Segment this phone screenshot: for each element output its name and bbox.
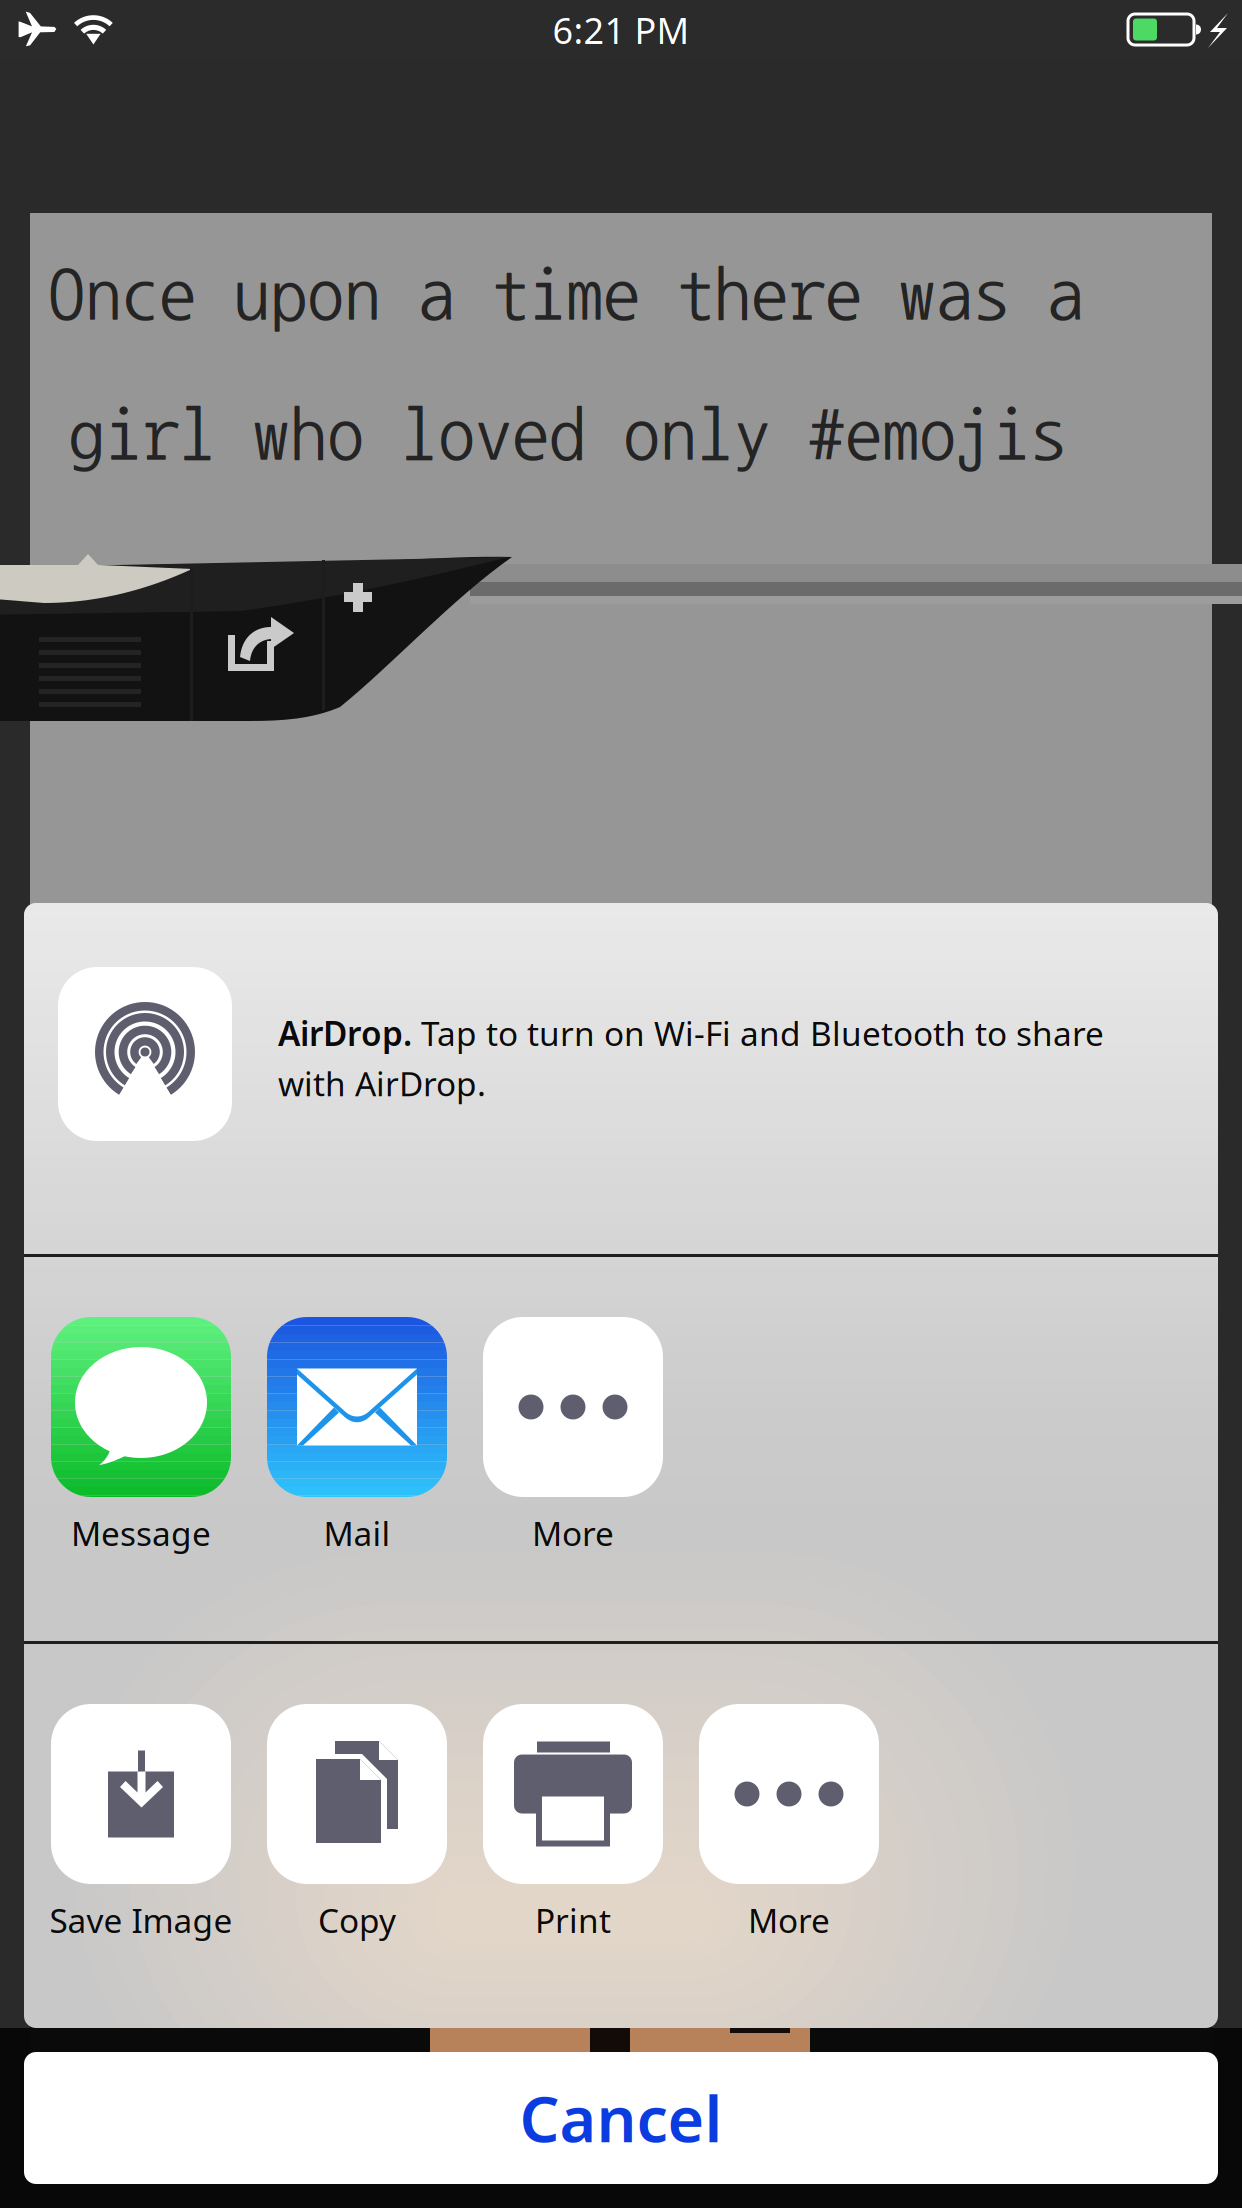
staticText: Cancel: [519, 2076, 722, 2160]
button[interactable]: Print: [0, 0, 400, 250]
staticText: with AirDrop.: [278, 1061, 486, 1106]
button[interactable]: More: [0, 0, 400, 250]
button[interactable]: Copy: [0, 0, 400, 250]
staticText: Save Image: [49, 1898, 232, 1942]
button[interactable]: More: [0, 0, 400, 250]
staticText: More: [748, 1898, 830, 1942]
staticText: Tap to turn on Wi-Fi and Bluetooth to sh…: [412, 1011, 1104, 1055]
staticText: Mail: [323, 1511, 390, 1555]
button[interactable]: Cancel: [0, 0, 1194, 132]
staticText: Once upon a time there was a: [48, 257, 1084, 332]
staticText: Print: [535, 1898, 611, 1942]
staticText: Copy: [318, 1898, 396, 1942]
button[interactable]: Save Image: [0, 0, 400, 250]
staticText: Message: [71, 1511, 211, 1555]
button[interactable]: Message: [0, 0, 400, 250]
staticText: AirDrop.: [278, 1011, 412, 1055]
staticText: More: [532, 1511, 614, 1555]
staticText: girl who loved only #emojis: [68, 397, 1067, 472]
button[interactable]: Mail: [0, 0, 400, 250]
button[interactable]: AirDrop.: [0, 0, 1194, 351]
staticText: 6:21 PM: [552, 6, 689, 54]
